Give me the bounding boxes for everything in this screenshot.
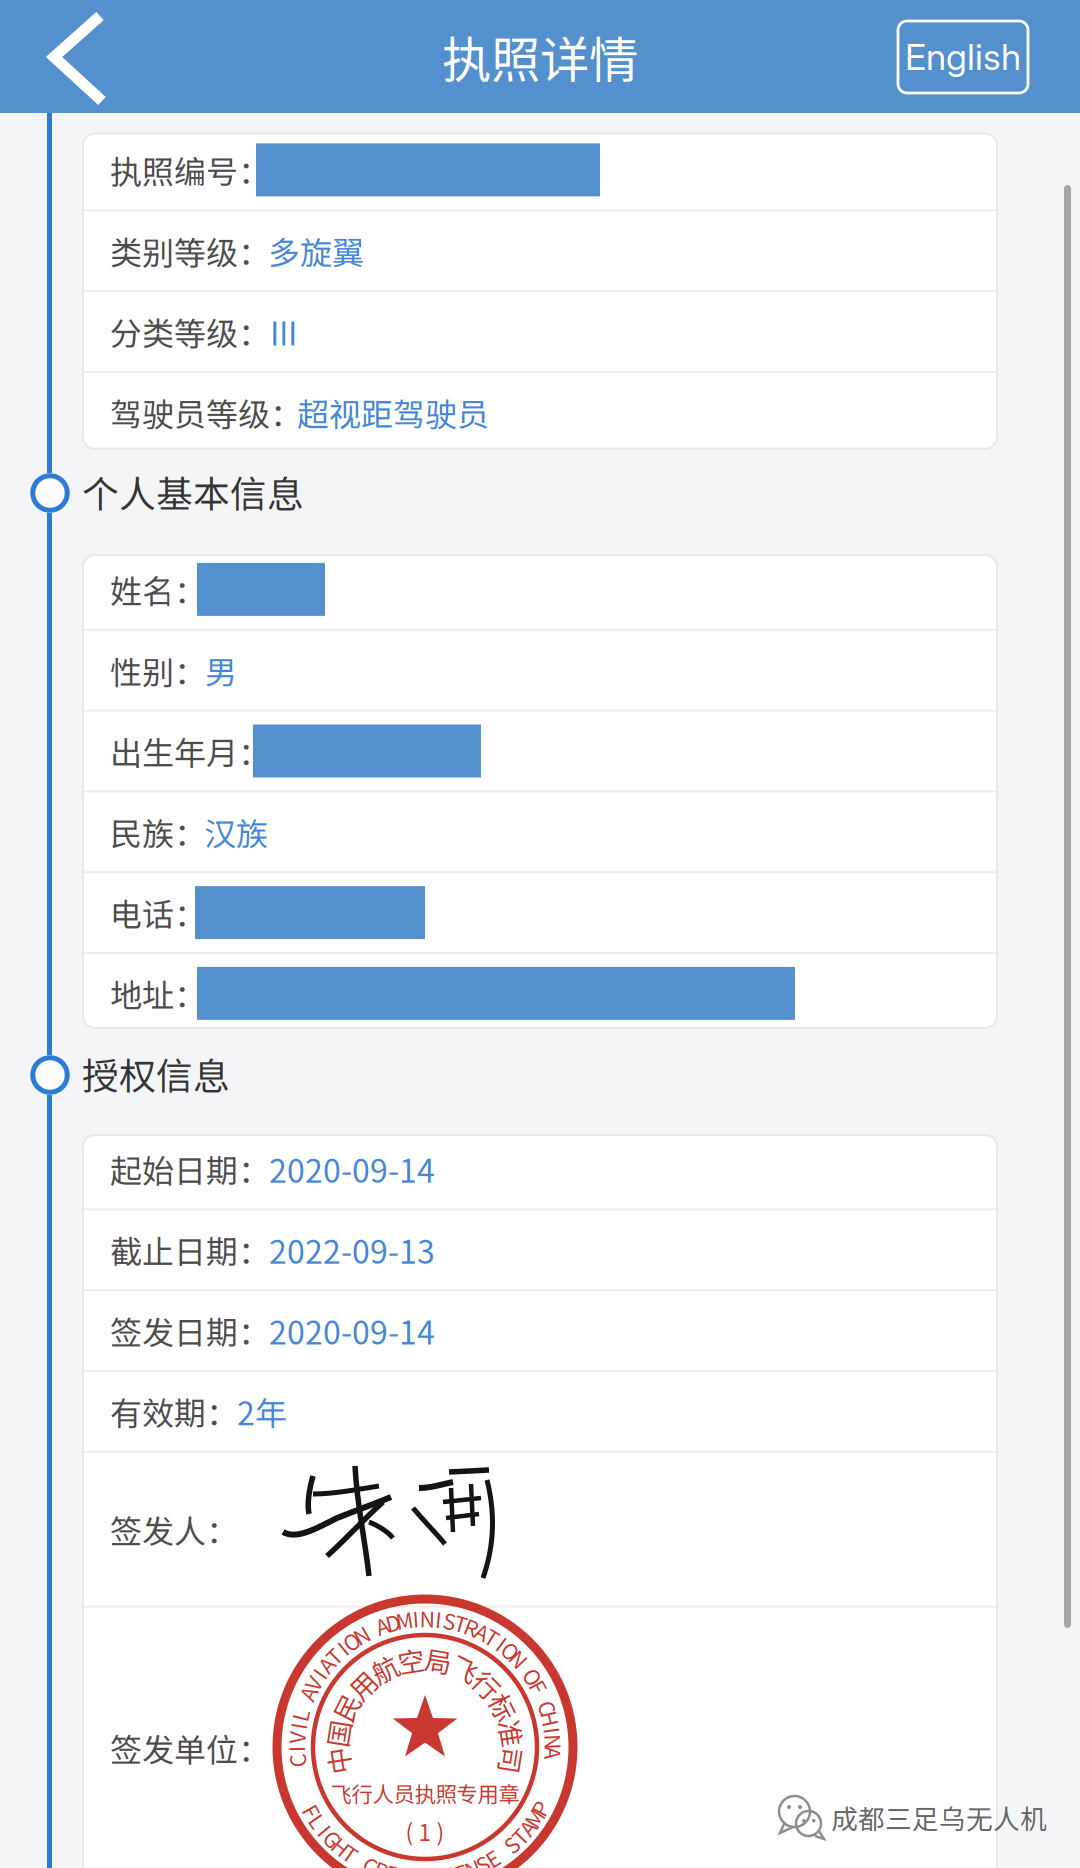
staticText: T	[418, 1603, 431, 1633]
staticText: 执照编号：	[110, 147, 270, 193]
button[interactable]: Back	[30, 0, 130, 113]
staticText: C	[418, 1603, 432, 1633]
button[interactable]: 姓名：	[83, 550, 997, 629]
staticText: 有效期：	[110, 1388, 238, 1434]
staticText: 超视距驾驶员	[297, 389, 489, 435]
staticText: 中	[411, 1640, 438, 1678]
staticText: 截止日期：	[110, 1226, 270, 1273]
staticText: D	[417, 1603, 432, 1633]
staticText	[422, 1603, 427, 1633]
staticText: English	[905, 35, 1021, 79]
staticText: 空	[411, 1640, 438, 1678]
staticText	[422, 1603, 427, 1633]
staticText: A	[418, 1603, 431, 1633]
staticText: ( 1 )	[405, 1815, 444, 1847]
staticText: 民族：	[110, 809, 206, 855]
button[interactable]: 驾驶员等级：	[83, 373, 997, 452]
staticText: I	[422, 1603, 428, 1633]
staticText: F	[419, 1603, 431, 1633]
staticText	[422, 1603, 427, 1633]
staticText: V	[419, 1603, 431, 1633]
staticText: 性别：	[110, 647, 206, 693]
staticText: 汉族	[204, 809, 268, 855]
staticText: 多旋翼	[268, 227, 364, 274]
staticText: N	[417, 1603, 432, 1633]
staticText: R	[418, 1603, 432, 1633]
staticText: O	[417, 1603, 433, 1633]
staticText: 2020-09-14	[269, 1146, 435, 1192]
staticText: I	[422, 1603, 428, 1633]
staticText: 授权信息	[82, 1047, 230, 1100]
staticText: 地址：	[110, 970, 206, 1016]
staticText: 出生年月：	[110, 728, 270, 774]
staticText: 标	[411, 1640, 438, 1678]
staticText: 类别等级：	[110, 227, 270, 274]
staticText: I	[422, 1603, 428, 1633]
button[interactable]: 有效期：	[83, 1372, 997, 1451]
button[interactable]: 截止日期：	[83, 1210, 997, 1289]
staticText: 国	[411, 1640, 438, 1678]
staticText: I	[422, 1603, 428, 1633]
button[interactable]: 类别等级：	[83, 211, 997, 290]
button[interactable]: 性别：	[83, 631, 997, 710]
staticText: I	[422, 1603, 428, 1633]
button[interactable]: 民族：	[83, 792, 997, 871]
staticText	[422, 1603, 427, 1633]
button[interactable]: 分类等级：	[83, 292, 997, 371]
staticText: 签发人：	[110, 1506, 238, 1552]
staticText: 飞	[411, 1640, 438, 1678]
button[interactable]: 执照编号：	[83, 130, 997, 209]
staticText: 执照详情	[442, 21, 638, 92]
staticText: N	[417, 1603, 432, 1633]
staticText: 2年	[237, 1388, 287, 1434]
button[interactable]: 出生年月：	[83, 712, 997, 790]
staticText: A	[418, 1603, 431, 1633]
staticText: I	[422, 1603, 428, 1633]
staticText: O	[417, 1603, 433, 1633]
button[interactable]: 起始日期：	[83, 1129, 997, 1208]
button[interactable]: 地址：	[83, 954, 997, 1033]
staticText: 签发单位：	[110, 1724, 270, 1771]
staticText: 起始日期：	[110, 1146, 270, 1192]
staticText: L	[419, 1603, 431, 1633]
button[interactable]: English	[898, 21, 1028, 93]
staticText: V	[419, 1603, 431, 1633]
staticText: M	[416, 1603, 433, 1633]
staticText: 准	[411, 1640, 438, 1678]
button[interactable]: 电话：	[83, 873, 997, 952]
staticText: A	[418, 1603, 431, 1633]
button[interactable]: 签发日期：	[83, 1291, 997, 1370]
staticText: 局	[411, 1640, 438, 1678]
staticText: 个人基本信息	[82, 465, 304, 518]
staticText: 姓名：	[110, 566, 206, 612]
staticText: H	[417, 1603, 433, 1633]
staticText: 飞行人员执照专用章	[330, 1778, 519, 1808]
staticText: N	[417, 1603, 432, 1633]
staticText: A	[418, 1603, 431, 1633]
staticText: 用	[411, 1640, 438, 1678]
staticText: 签发日期：	[110, 1307, 270, 1354]
staticText: N	[417, 1603, 432, 1633]
staticText: 电话：	[110, 889, 206, 936]
